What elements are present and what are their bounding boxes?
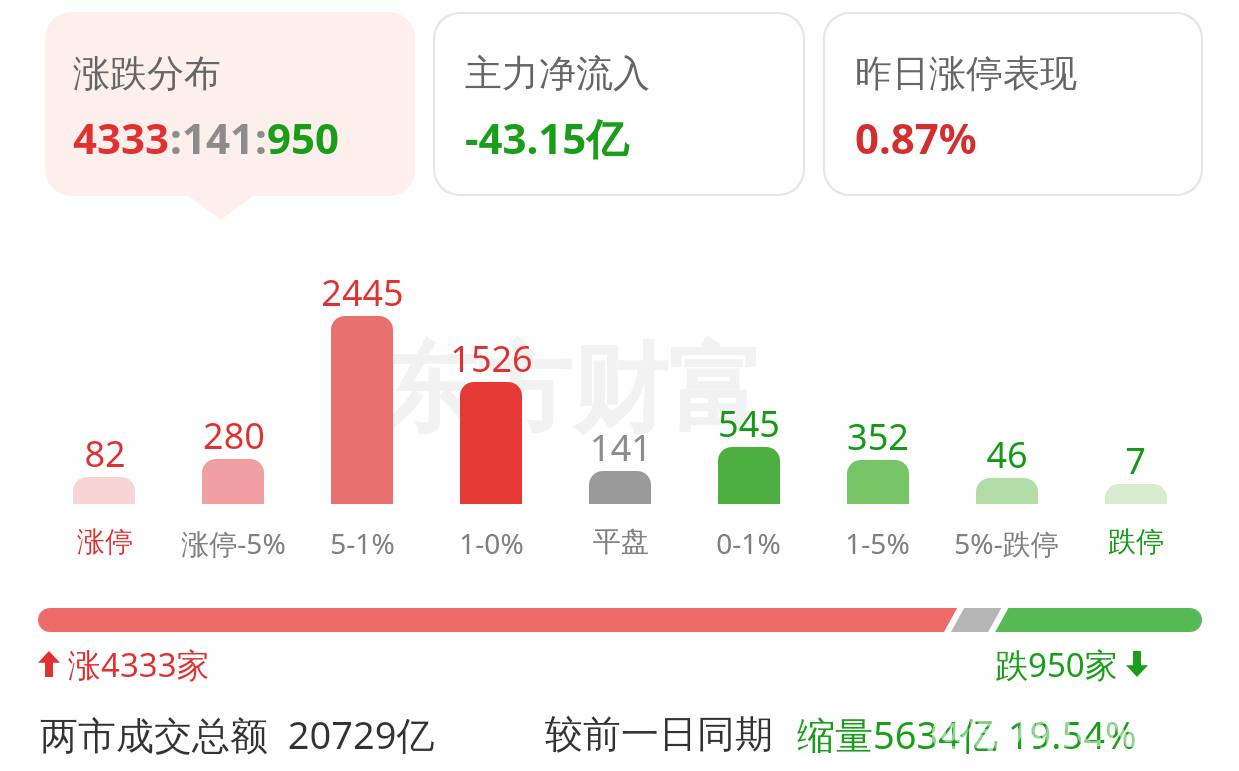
- staticText: 0.87%: [855, 109, 977, 166]
- staticText: 涨跌分布: [73, 50, 221, 97]
- staticText: 涨4333家: [68, 642, 210, 687]
- staticText: 141: [182, 109, 255, 166]
- staticText: 缩量5634亿 19.54%: [797, 708, 1137, 760]
- staticText: 7: [1125, 436, 1146, 485]
- staticText: :: [255, 109, 267, 166]
- staticText: 4333: [73, 109, 170, 166]
- button[interactable]: 涨跌家数比例: [38, 608, 1202, 632]
- staticText: 352: [847, 412, 909, 461]
- staticText: -43.15亿: [465, 109, 629, 166]
- staticText: 涨停-5%: [181, 524, 286, 562]
- staticText: 东方财富: [380, 330, 764, 451]
- staticText: 82: [84, 429, 126, 478]
- staticText: 跌停: [1108, 524, 1164, 559]
- staticText: 平盘: [593, 524, 649, 559]
- staticText: 950: [267, 109, 340, 166]
- staticText: :: [170, 109, 182, 166]
- staticText: 0-1%: [716, 524, 781, 562]
- staticText: 141: [590, 423, 652, 472]
- staticText: 1-0%: [459, 524, 524, 562]
- staticText: 46: [986, 430, 1028, 479]
- staticText: 两市成交总额 20729亿: [40, 708, 435, 760]
- staticText: @常树ICNR: [930, 700, 1168, 760]
- staticText: 涨停: [77, 524, 133, 559]
- staticText: 较前一日同期: [545, 710, 773, 758]
- button[interactable]: 涨跌分布: [45, 12, 415, 196]
- staticText: 5%-跌停: [954, 524, 1059, 562]
- staticText: 1-5%: [845, 524, 910, 562]
- staticText: 2445: [321, 268, 404, 317]
- staticText: 5-1%: [330, 524, 395, 562]
- staticText: 545: [718, 399, 780, 448]
- staticText: 280: [203, 411, 265, 460]
- staticText: 1526: [450, 334, 533, 383]
- staticText: 跌950家: [995, 642, 1118, 687]
- staticText: 昨日涨停表现: [855, 50, 1077, 97]
- staticText: 主力净流入: [465, 50, 650, 97]
- button[interactable]: 主力净流入: [435, 14, 803, 194]
- button[interactable]: 昨日涨停表现: [825, 14, 1201, 194]
